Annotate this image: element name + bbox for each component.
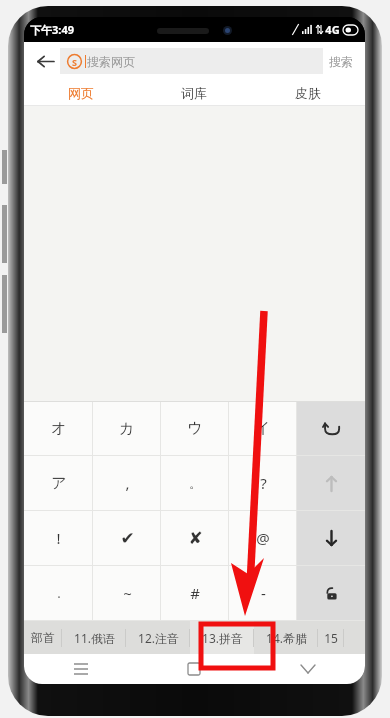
button[interactable]: ! xyxy=(24,511,93,565)
button[interactable]: ~ xyxy=(93,566,161,620)
staticText: 12.注音 xyxy=(138,630,179,646)
button[interactable]: 词库 xyxy=(137,80,251,106)
button[interactable]: ✘ xyxy=(161,511,229,565)
staticText: 11.俄语 xyxy=(74,630,115,646)
button[interactable]: 上移 xyxy=(297,456,365,510)
staticText: 皮肤 xyxy=(295,85,321,101)
button[interactable]: 收起键盘 xyxy=(251,654,365,684)
button[interactable]: 部首 xyxy=(24,621,62,654)
button[interactable]: イ xyxy=(229,401,297,455)
button[interactable]: ウ xyxy=(161,401,229,455)
button[interactable]: 。 xyxy=(161,456,229,510)
button[interactable]: 皮肤 xyxy=(251,80,365,106)
button[interactable]: - xyxy=(229,566,297,620)
button[interactable]: @ xyxy=(229,511,297,565)
button[interactable]: ア xyxy=(24,456,93,510)
button[interactable]: 主屏幕 xyxy=(137,654,251,684)
staticText: 网页 xyxy=(68,85,94,101)
staticText: ? xyxy=(260,473,267,493)
button[interactable]: カ xyxy=(93,401,161,455)
staticText: S xyxy=(72,56,77,68)
button[interactable]: 11.俄语 xyxy=(62,621,126,654)
staticText: イ xyxy=(255,419,271,438)
button[interactable]: 返回 xyxy=(30,46,60,76)
staticText: 搜索 xyxy=(329,54,353,69)
button[interactable]: 14.希腊 xyxy=(254,621,318,654)
button[interactable]: 12.注音 xyxy=(126,621,190,654)
button[interactable]: S xyxy=(60,48,323,74)
staticText: 部首 xyxy=(31,630,55,645)
staticText: 下午3:49 xyxy=(30,22,74,37)
staticText: , xyxy=(125,473,130,493)
staticText: - xyxy=(261,583,266,603)
button[interactable]: 网页 xyxy=(24,80,137,106)
staticText: 4G xyxy=(325,22,340,37)
staticText: 。 xyxy=(189,475,202,491)
staticText: ✘ xyxy=(188,528,203,548)
staticText: 15 xyxy=(324,630,338,646)
button[interactable]: 13.拼音 xyxy=(190,621,254,654)
button[interactable]: 15 xyxy=(318,621,344,654)
staticText: # xyxy=(190,583,200,603)
staticText: ア xyxy=(51,474,67,493)
staticText: ✔ xyxy=(120,528,135,548)
button[interactable]: 撤销 xyxy=(297,401,365,455)
staticText: 13.拼音 xyxy=(202,630,243,646)
button[interactable]: 解锁 xyxy=(297,566,365,620)
staticText: カ xyxy=(119,419,135,438)
staticText: 14.希腊 xyxy=(266,630,307,646)
staticText: ~ xyxy=(123,583,132,603)
staticText: . xyxy=(57,584,61,602)
button[interactable]: 下移 xyxy=(297,511,365,565)
staticText: ! xyxy=(56,528,61,548)
button[interactable]: 最近任务 xyxy=(24,654,137,684)
staticText: 词库 xyxy=(181,85,207,101)
staticText: 搜索网页 xyxy=(87,54,135,69)
staticText: オ xyxy=(51,419,67,438)
button[interactable]: . xyxy=(24,566,93,620)
button[interactable]: オ xyxy=(24,401,93,455)
button[interactable]: , xyxy=(93,456,161,510)
button[interactable]: ✔ xyxy=(93,511,161,565)
staticText: ウ xyxy=(187,419,203,438)
staticText: @ xyxy=(256,528,270,548)
button[interactable]: # xyxy=(161,566,229,620)
button[interactable]: 搜索 xyxy=(329,54,353,69)
button[interactable]: ? xyxy=(229,456,297,510)
